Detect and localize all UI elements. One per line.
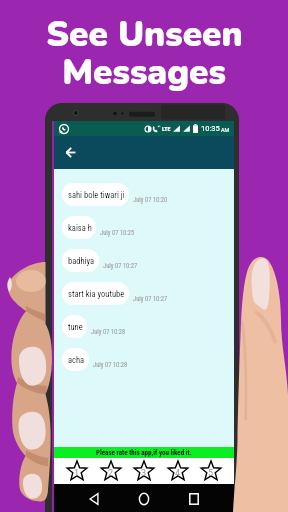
staticText: 1 — [74, 468, 80, 479]
staticText: See Unseen — [46, 11, 243, 59]
staticText: July 07 10:20 — [133, 196, 168, 204]
staticText: AM — [221, 127, 230, 133]
button[interactable]: Rate 1 stars — [66, 459, 88, 483]
staticText: start kia youtube — [68, 289, 125, 299]
button[interactable]: Back — [59, 141, 83, 165]
button[interactable]: Back — [74, 489, 114, 509]
button[interactable]: Rate 5 stars — [200, 459, 222, 483]
button[interactable]: sahi bole tiwari ji — [62, 183, 129, 206]
staticText: July 07 10:27 — [133, 295, 168, 303]
staticText: July 07 10:28 — [93, 361, 128, 369]
staticText: Messages — [62, 49, 226, 97]
button[interactable]: start kia youtube — [62, 282, 129, 305]
button[interactable]: Recents — [174, 489, 214, 509]
button[interactable]: Home — [124, 489, 164, 509]
staticText: 5 — [208, 468, 214, 479]
button[interactable]: kaisa h — [62, 216, 96, 239]
staticText: Please rate this app,if you liked it. — [96, 449, 192, 457]
staticText: kaisa h — [68, 223, 92, 233]
staticText: July 07 10:27 — [103, 262, 138, 270]
button[interactable]: badhiya — [62, 249, 99, 272]
staticText: July 07 10:25 — [100, 229, 135, 237]
staticText: sahi bole tiwari ji — [68, 190, 125, 200]
button[interactable]: Rate 3 stars — [133, 459, 155, 483]
button[interactable]: tune — [62, 315, 87, 338]
staticText: 2 — [108, 468, 114, 479]
staticText: 4 — [175, 468, 181, 479]
button[interactable]: Rate 4 stars — [167, 459, 189, 483]
staticText: July 07 10:28 — [91, 328, 126, 336]
staticText: tune — [68, 322, 83, 332]
button[interactable]: Rate 2 stars — [100, 459, 122, 483]
staticText: badhiya — [68, 256, 95, 266]
staticText: 3 — [141, 468, 147, 479]
staticText: 10:35 — [201, 124, 220, 133]
staticText: LTE — [162, 125, 171, 132]
staticText: acha — [68, 355, 85, 365]
button[interactable]: acha — [62, 348, 89, 371]
